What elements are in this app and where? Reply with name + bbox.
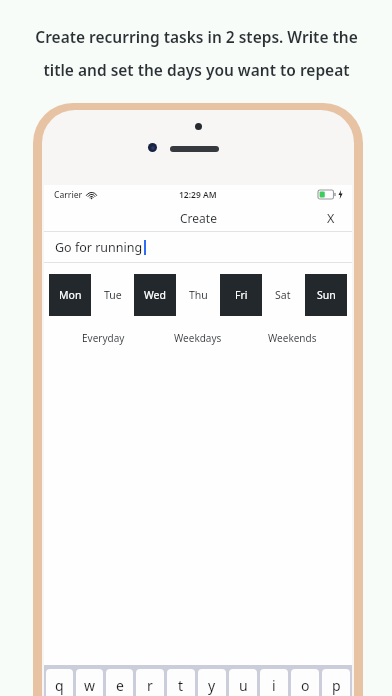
staticText: Sat [275, 288, 291, 302]
staticText: Weekdays [174, 331, 222, 345]
staticText: title and set the days you want to repea… [43, 59, 350, 80]
button[interactable]: w [76, 669, 103, 696]
staticText: Thu [189, 288, 208, 302]
button[interactable]: Go for running [44, 232, 352, 262]
staticText: Carrier [54, 189, 83, 201]
staticText: Fri [235, 288, 248, 302]
button[interactable]: q [46, 669, 73, 696]
staticText: o [301, 676, 310, 695]
button[interactable]: r [136, 669, 164, 696]
staticText: Wed [144, 288, 166, 302]
button[interactable]: i [260, 669, 288, 696]
staticText: Sun [317, 288, 336, 302]
button[interactable]: Close [320, 207, 342, 229]
staticText: p [332, 676, 341, 695]
staticText: w [84, 676, 96, 695]
button[interactable]: p [322, 669, 350, 696]
staticText: Create [180, 210, 217, 226]
button[interactable]: Thu [177, 274, 219, 316]
button[interactable]: t [167, 669, 195, 696]
button[interactable]: Fri [220, 274, 262, 316]
button[interactable]: Mon [49, 274, 91, 316]
button[interactable]: y [198, 669, 226, 696]
staticText: q [55, 676, 64, 695]
staticText: t [178, 676, 184, 695]
button[interactable]: Everyday [56, 329, 150, 347]
staticText: Go for running [55, 239, 143, 256]
button[interactable]: Wed [134, 274, 176, 316]
staticText: r [147, 676, 153, 695]
button[interactable]: u [229, 669, 257, 696]
button[interactable]: o [291, 669, 319, 696]
staticText: y [208, 676, 216, 695]
staticText: Everyday [82, 331, 125, 345]
staticText: e [116, 676, 124, 695]
button[interactable]: Weekdays [150, 329, 245, 347]
staticText: u [239, 676, 248, 695]
staticText: Tue [104, 288, 122, 302]
staticText: i [272, 676, 276, 695]
button[interactable]: Tue [92, 274, 134, 316]
button[interactable]: Weekends [245, 329, 340, 347]
button[interactable]: Sat [262, 274, 304, 316]
staticText: Mon [59, 288, 82, 302]
button[interactable]: e [106, 669, 133, 696]
staticText: 12:29 AM [179, 189, 217, 201]
staticText: Create recurring tasks in 2 steps. Write… [35, 26, 358, 47]
button[interactable]: Sun [305, 274, 347, 316]
staticText: Weekends [268, 331, 317, 345]
staticText: X [327, 210, 335, 227]
